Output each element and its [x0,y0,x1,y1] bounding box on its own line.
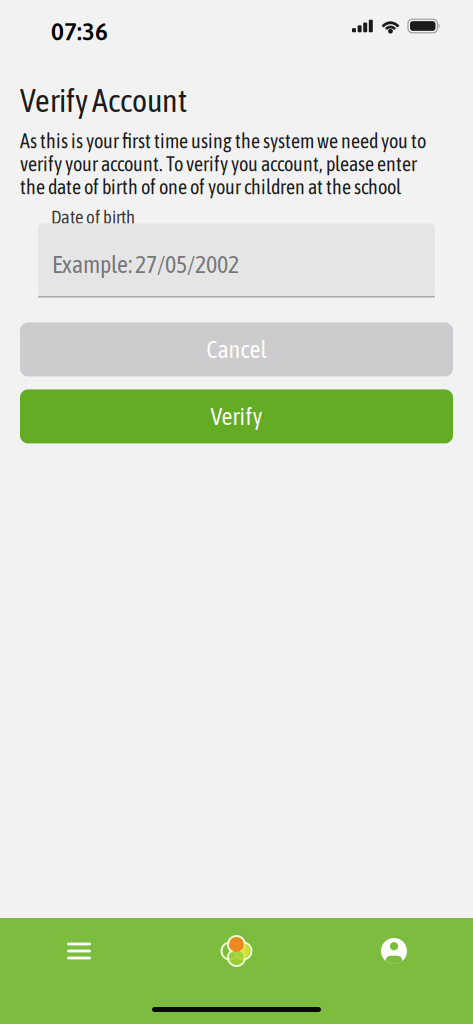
button[interactable]: Verify [20,389,453,443]
button[interactable]: Menu [27,918,131,984]
staticText: Cancel [206,336,266,363]
staticText: Example: 27/05/2002 [52,251,239,278]
button[interactable]: Home [184,918,288,984]
staticText: 07:36 [51,18,108,45]
button[interactable]: Profile [342,918,446,984]
button[interactable]: Cancel [20,322,453,376]
staticText: Verify Account [20,82,187,119]
staticText: Verify [210,403,262,430]
staticText: As this is your first time using the sys… [20,130,426,198]
staticText: Date of birth [51,206,135,228]
